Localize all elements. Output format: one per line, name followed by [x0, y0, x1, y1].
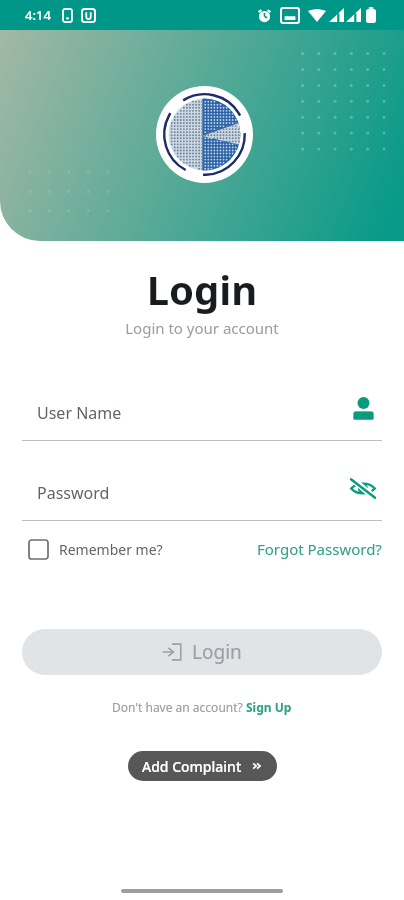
staticText: Login to your account	[0, 318, 404, 338]
staticText: Sign Up	[246, 699, 292, 715]
button[interactable]: Don't have an account?	[0, 699, 404, 715]
staticText: Login	[0, 262, 404, 316]
staticText: Forgot Password?	[257, 539, 382, 559]
staticText: Login	[192, 639, 242, 665]
staticText: Remember me?	[59, 540, 163, 559]
button[interactable]: Forgot Password?	[257, 539, 382, 559]
staticText: Add Complaint	[142, 757, 242, 776]
staticText: User Name	[37, 402, 122, 424]
staticText: 4:14	[25, 6, 51, 24]
button[interactable]: Password	[348, 473, 378, 503]
button[interactable]: Remember me?	[22, 540, 163, 559]
button[interactable]: User Name	[348, 393, 378, 423]
button[interactable]: Add Complaint	[128, 751, 277, 781]
button[interactable]: Login	[22, 629, 382, 675]
staticText: Don't have an account?	[112, 699, 246, 715]
staticText: Password	[37, 482, 110, 504]
